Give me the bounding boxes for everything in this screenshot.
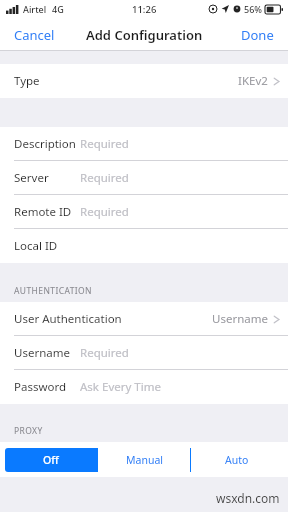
button[interactable]: Server [0,161,288,195]
staticText: Password [14,379,67,395]
staticText: Description [14,136,76,152]
button[interactable]: User Authentication [0,302,288,336]
staticText: Done [241,26,274,44]
staticText: User Authentication [14,311,122,327]
staticText: Off [43,453,59,467]
button[interactable]: Username [0,336,288,370]
staticText: 56% [244,3,262,15]
staticText: Server [14,170,49,186]
staticText: Username [14,345,70,361]
staticText: Airtel [23,3,47,15]
button[interactable]: Description [0,127,288,161]
staticText: IKEv2 [238,73,268,89]
button[interactable]: Password [0,370,288,404]
button[interactable]: Done [227,18,288,51]
staticText: Username [212,311,268,327]
staticText: wsxdn.com [216,490,280,506]
other: Open [273,314,280,325]
staticText: Type [14,73,40,89]
button[interactable]: Local ID [0,229,288,263]
staticText: 11:26 [132,3,157,16]
staticText: AUTHENTICATION [14,285,92,297]
staticText: PROXY [14,425,43,437]
button[interactable]: Cancel [0,18,69,51]
staticText: Local ID [14,238,58,254]
staticText: 4G [52,3,64,15]
staticText: Auto [225,453,249,467]
staticText: Ask Every Time [80,379,161,395]
button[interactable]: Remote ID [0,195,288,229]
staticText: Cancel [14,26,55,44]
button[interactable]: Off [5,448,97,472]
staticText: Required [80,170,129,186]
button[interactable]: Auto [191,448,283,472]
staticText: Manual [126,453,163,467]
staticText: Required [80,345,129,361]
button[interactable]: Type [0,64,288,98]
button[interactable]: Manual [98,448,190,472]
staticText: Required [80,136,129,152]
other: Open [273,76,280,87]
staticText: Remote ID [14,204,72,220]
staticText: Add Configuration [86,26,203,44]
staticText: Required [80,204,129,220]
